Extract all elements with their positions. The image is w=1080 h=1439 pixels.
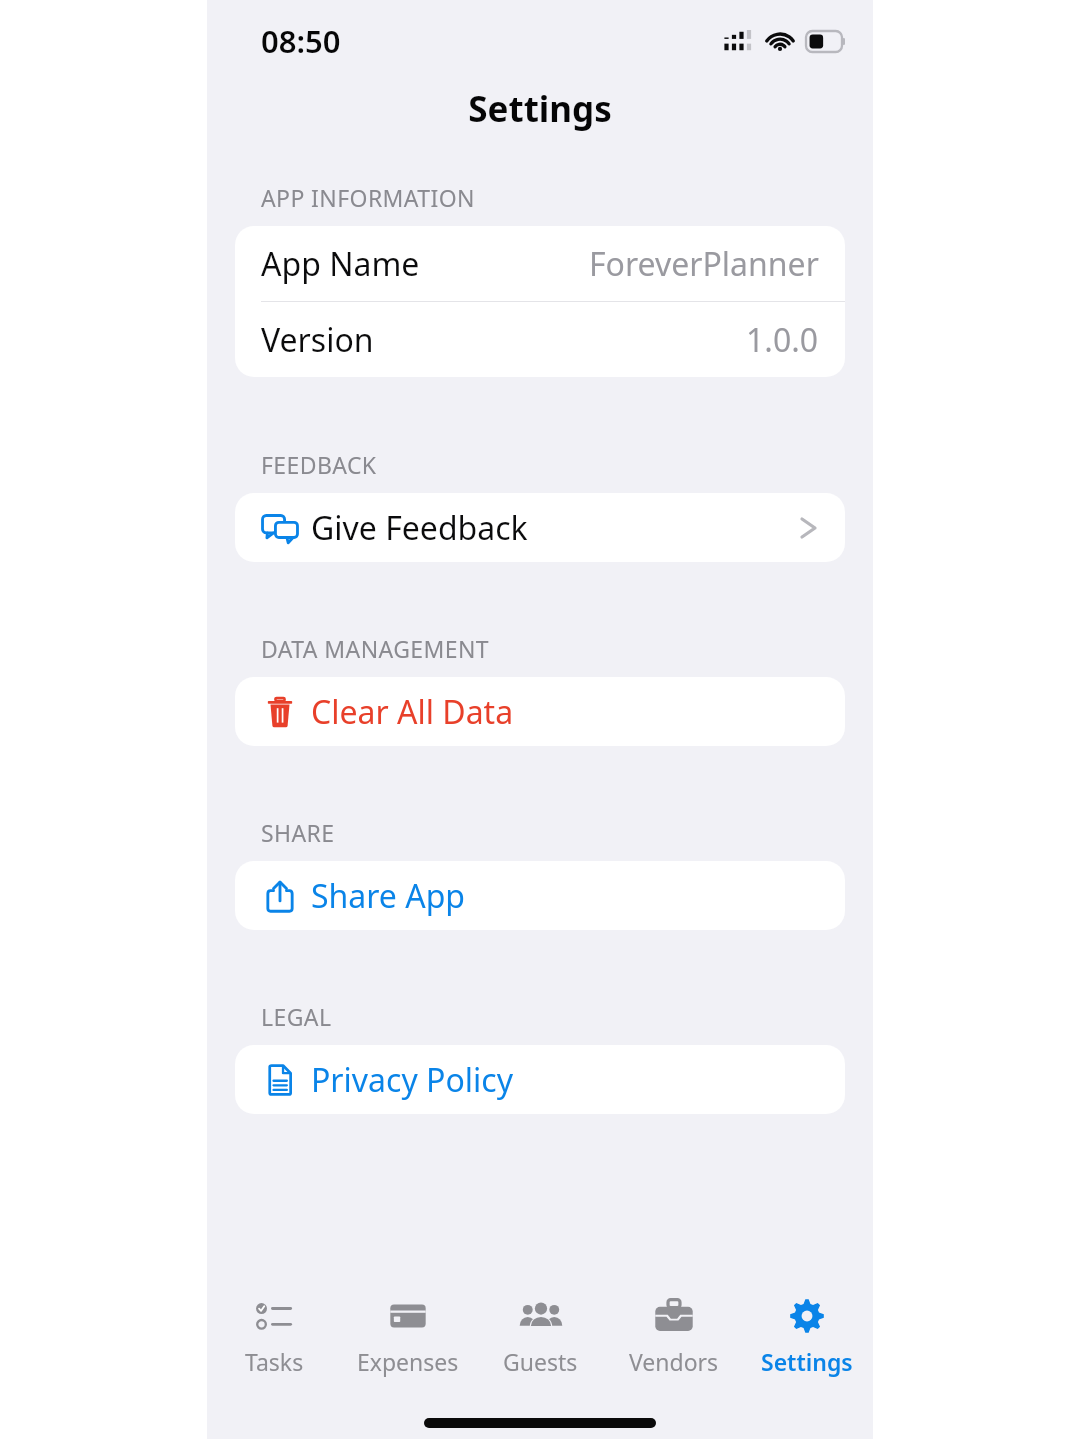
other: Guests — [515, 1294, 567, 1338]
button[interactable]: Clear All Data — [235, 677, 845, 746]
button[interactable]: Expenses — [341, 1280, 474, 1390]
staticText: Expenses — [357, 1346, 459, 1377]
staticText: APP INFORMATION — [261, 182, 475, 213]
other: Give Feedback — [261, 509, 299, 547]
button[interactable]: Privacy Policy — [235, 1045, 845, 1114]
staticText: Version — [261, 318, 374, 362]
staticText: Share App — [311, 874, 466, 918]
other: Expenses — [382, 1294, 434, 1338]
staticText: Settings — [761, 1346, 853, 1377]
staticText: SHARE — [261, 817, 335, 848]
staticText: Privacy Policy — [311, 1058, 513, 1102]
staticText: App Name — [261, 242, 420, 286]
staticText: Guests — [503, 1346, 578, 1377]
staticText: LEGAL — [261, 1001, 332, 1032]
staticText: Tasks — [245, 1346, 304, 1377]
other: Vendors — [648, 1294, 700, 1338]
other: Tasks — [248, 1294, 300, 1338]
button[interactable]: Give Feedback — [235, 493, 845, 562]
button[interactable]: Vendors — [607, 1280, 740, 1390]
staticText: 1.0.0 — [746, 318, 819, 362]
other: Clear All Data — [261, 693, 299, 731]
other: Share App — [261, 877, 299, 915]
button[interactable]: Share App — [235, 861, 845, 930]
button[interactable]: Guests — [474, 1280, 607, 1390]
staticText: Vendors — [629, 1346, 719, 1377]
staticText: Settings — [468, 85, 612, 133]
staticText: 08:50 — [261, 20, 341, 62]
button[interactable]: Settings — [740, 1280, 873, 1390]
button[interactable]: Tasks — [207, 1280, 341, 1390]
staticText: Give Feedback — [311, 506, 528, 550]
button[interactable]: Version — [235, 302, 845, 377]
staticText: DATA MANAGEMENT — [261, 633, 489, 664]
button[interactable]: App Name — [235, 226, 845, 301]
other: Settings — [781, 1294, 833, 1338]
staticText: Clear All Data — [311, 690, 514, 734]
staticText: FEEDBACK — [261, 449, 377, 480]
other: Privacy Policy — [261, 1061, 299, 1099]
staticText: ForeverPlanner — [589, 242, 819, 286]
